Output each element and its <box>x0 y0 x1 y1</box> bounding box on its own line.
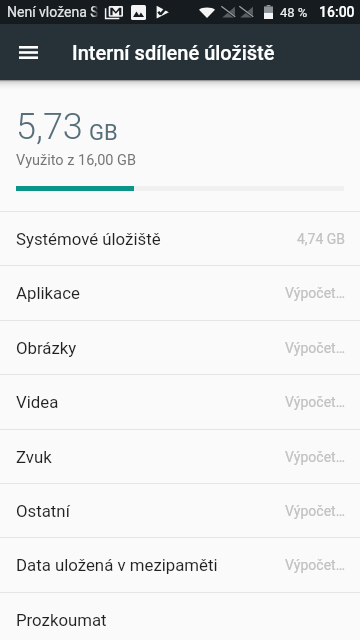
staticText: Ostatní <box>16 501 70 521</box>
staticText: Prozkoumat <box>16 610 107 630</box>
staticText: Data uložená v mezipaměti <box>16 555 218 575</box>
staticText: Výpočet… <box>285 449 346 465</box>
button[interactable]: Open navigation drawer <box>0 24 56 80</box>
staticText: Obrázky <box>16 338 77 358</box>
staticText: 16:00 <box>319 4 355 20</box>
staticText: Interní sdílené úložiště <box>72 41 275 64</box>
button[interactable]: Prozkoumat <box>0 593 360 640</box>
staticText: 5,73 <box>16 106 83 148</box>
staticText: Aplikace <box>16 283 80 303</box>
staticText: Není vložena SIM karta <box>7 4 101 20</box>
staticText: Výpočet… <box>285 285 346 301</box>
staticText: Výpočet… <box>285 340 346 356</box>
button[interactable]: Zvuk <box>0 430 360 483</box>
staticText: GB <box>89 120 118 146</box>
button[interactable]: Data uložená v mezipaměti <box>0 538 360 591</box>
staticText: 4,74 GB <box>297 231 346 247</box>
staticText: Videa <box>16 392 59 412</box>
staticText: Využito z 16,00 GB <box>16 152 136 169</box>
staticText: Systémové úložiště <box>16 229 161 249</box>
button[interactable]: Ostatní <box>0 484 360 537</box>
staticText: Výpočet… <box>285 394 346 410</box>
button[interactable]: Videa <box>0 375 360 428</box>
staticText: Výpočet… <box>285 503 346 519</box>
staticText: 48 % <box>280 5 308 20</box>
staticText: Zvuk <box>16 447 52 467</box>
button[interactable]: Systémové úložiště <box>0 212 360 265</box>
staticText: Výpočet… <box>285 557 346 573</box>
button[interactable]: Obrázky <box>0 321 360 374</box>
button[interactable]: Aplikace <box>0 266 360 319</box>
